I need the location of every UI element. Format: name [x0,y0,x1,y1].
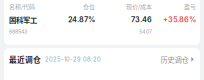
staticText: 现价/成本 [126,2,152,11]
staticText: 历史调仓 [160,54,188,65]
staticText: 仓位 [83,2,95,11]
staticText: 2025-10-29 08:20 [45,56,101,63]
staticText: 688543 [9,28,27,35]
staticText: +35.86% [163,15,196,24]
staticText: 盈亏 [184,2,196,11]
staticText: 最近调仓 [9,54,41,65]
staticText: 24.87% [68,15,95,24]
staticText: 国科军工 [9,14,37,25]
button[interactable]: 历史调仓 [152,49,194,70]
staticText: 54.07 [139,28,152,35]
staticText: 73.46 [131,15,152,24]
staticText: 名称/代码 [9,2,35,11]
